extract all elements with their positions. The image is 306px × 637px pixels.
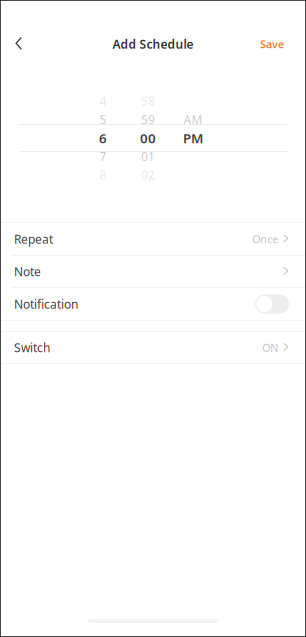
staticText: Save <box>260 37 284 51</box>
staticText: Once <box>252 232 278 246</box>
staticText: 7 <box>99 148 106 164</box>
button[interactable]: Notification <box>255 293 289 314</box>
staticText: 02 <box>141 167 155 183</box>
button[interactable]: Save <box>254 29 290 59</box>
staticText: Note <box>14 263 41 279</box>
staticText: 59 <box>141 112 155 127</box>
staticText: ON <box>262 340 278 355</box>
staticText: AM <box>183 112 202 127</box>
button[interactable]: Back <box>8 29 30 59</box>
staticText: 4 <box>99 93 106 109</box>
staticText: Notification <box>14 296 78 312</box>
button[interactable]: Repeat <box>0 223 306 255</box>
staticText: 6 <box>99 129 107 147</box>
staticText: 58 <box>141 93 155 109</box>
button[interactable]: Switch <box>0 332 306 363</box>
staticText: Repeat <box>14 231 53 247</box>
staticText: 01 <box>141 148 155 164</box>
staticText: 8 <box>99 167 106 183</box>
staticText: 00 <box>140 129 156 147</box>
button[interactable]: Notification <box>0 288 306 320</box>
staticText: Add Schedule <box>112 36 193 52</box>
staticText: PM <box>183 129 203 147</box>
button[interactable]: Note <box>0 256 306 287</box>
staticText: 5 <box>99 112 106 127</box>
staticText: Switch <box>14 339 50 355</box>
